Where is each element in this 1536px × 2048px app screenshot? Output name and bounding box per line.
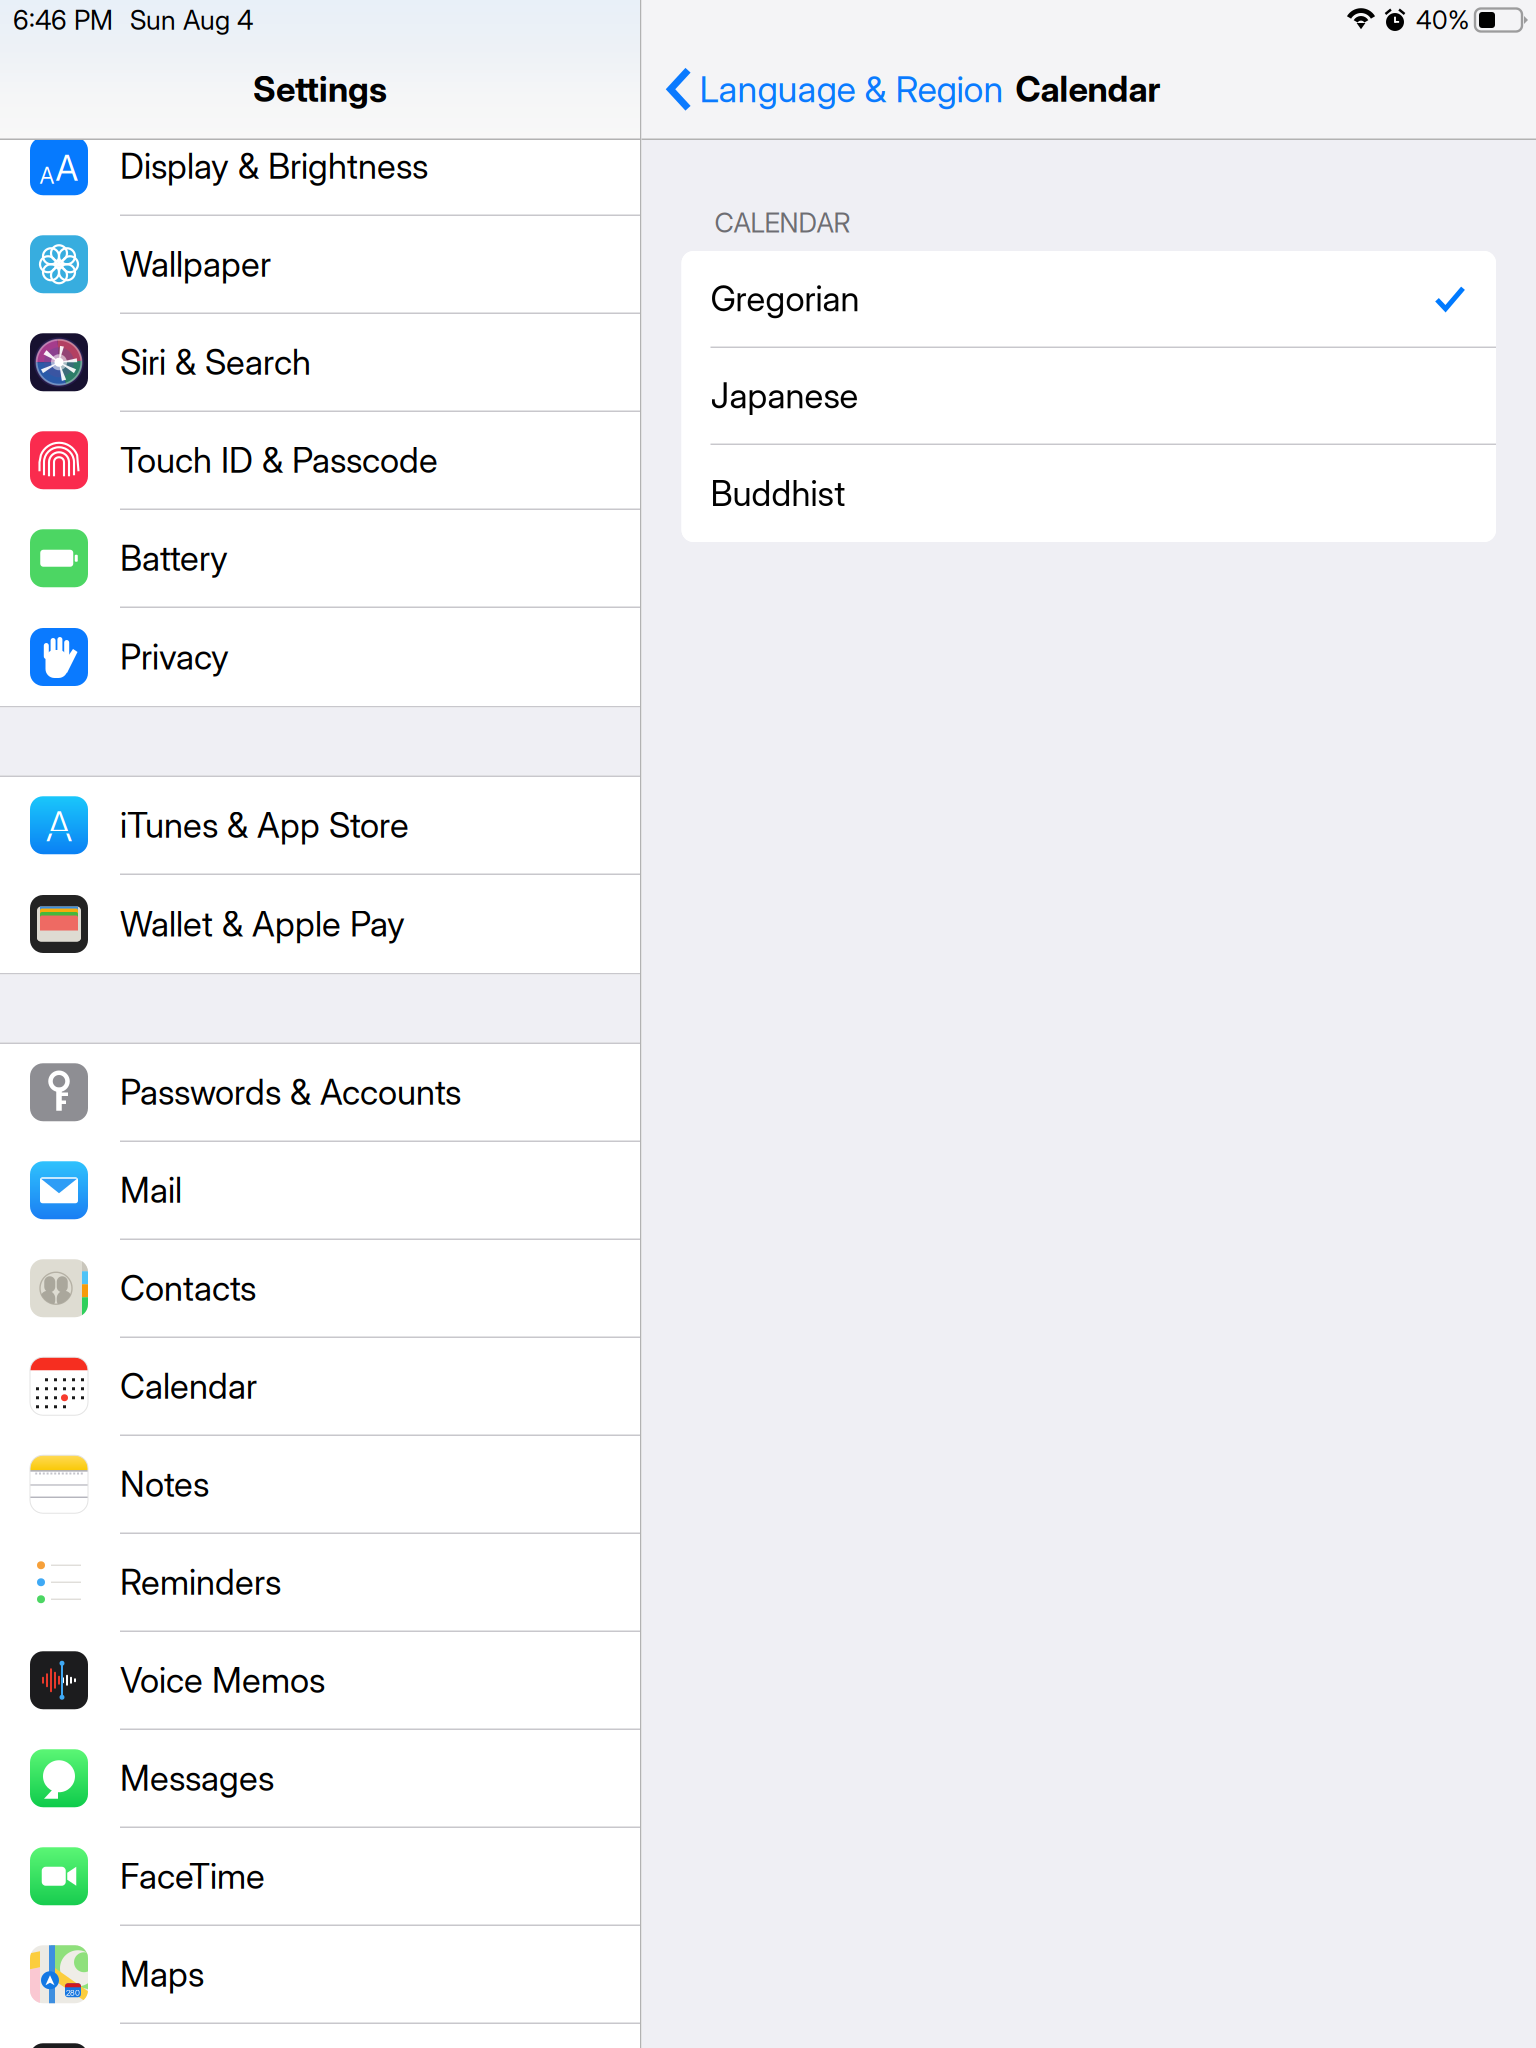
button[interactable]: Siri & Search: [0, 314, 640, 412]
button[interactable]: Buddhist: [681, 445, 1496, 542]
staticText: Display & Brightness: [120, 145, 428, 187]
button[interactable]: Wallpaper: [0, 216, 640, 314]
staticText: Reminders: [120, 1561, 281, 1603]
staticText: CALENDAR: [714, 207, 850, 239]
staticText: Wallpaper: [120, 243, 271, 285]
staticText: Gregorian: [710, 278, 859, 320]
staticText: Privacy: [120, 636, 229, 678]
staticText: Sun Aug 4: [130, 4, 253, 36]
staticText: Calendar: [120, 1365, 257, 1407]
button[interactable]: Gregorian: [681, 251, 1496, 348]
staticText: Notes: [120, 1463, 209, 1505]
button[interactable]: Privacy: [0, 608, 640, 706]
button[interactable]: Notes: [0, 1436, 640, 1534]
staticText: 40%: [1416, 5, 1469, 35]
button[interactable]: FaceTime: [0, 1828, 640, 1926]
staticText: Messages: [120, 1757, 274, 1799]
staticText: Siri & Search: [120, 341, 311, 383]
staticText: FaceTime: [120, 1855, 265, 1897]
button[interactable]: Passwords & Accounts: [0, 1044, 640, 1142]
button[interactable]: Mail: [0, 1142, 640, 1240]
button[interactable]: 280: [0, 1926, 640, 2024]
staticText: 6:46 PM: [13, 4, 113, 36]
staticText: Voice Memos: [120, 1659, 325, 1701]
button[interactable]: Safari: [0, 2024, 640, 2048]
button[interactable]: Wallet & Apple Pay: [0, 875, 640, 973]
staticText: Japanese: [710, 375, 858, 417]
button[interactable]: Japanese: [681, 348, 1496, 445]
button[interactable]: Messages: [0, 1730, 640, 1828]
button[interactable]: Voice Memos: [0, 1632, 640, 1730]
staticText: Passwords & Accounts: [120, 1071, 461, 1113]
staticText: Calendar: [1015, 68, 1160, 110]
staticText: iTunes & App Store: [120, 804, 409, 846]
staticText: Mail: [120, 1169, 182, 1211]
button[interactable]: Reminders: [0, 1534, 640, 1632]
staticText: A: [46, 801, 72, 851]
staticText: 280: [66, 1988, 80, 1998]
staticText: A: [39, 162, 54, 189]
button[interactable]: A: [0, 118, 640, 216]
staticText: Contacts: [120, 1267, 256, 1309]
staticText: Wallet & Apple Pay: [120, 903, 405, 945]
button[interactable]: Battery: [0, 510, 640, 608]
button[interactable]: Language & Region: [666, 66, 1003, 112]
button[interactable]: Calendar: [0, 1338, 640, 1436]
staticText: A: [55, 147, 78, 189]
staticText: Settings: [253, 68, 387, 110]
staticText: Touch ID & Passcode: [120, 439, 438, 481]
button[interactable]: Contacts: [0, 1240, 640, 1338]
staticText: Maps: [120, 1953, 204, 1995]
staticText: Language & Region: [699, 67, 1003, 111]
button[interactable]: A: [0, 777, 640, 875]
staticText: Buddhist: [710, 472, 845, 514]
staticText: Battery: [120, 537, 228, 579]
button[interactable]: Touch ID & Passcode: [0, 412, 640, 510]
